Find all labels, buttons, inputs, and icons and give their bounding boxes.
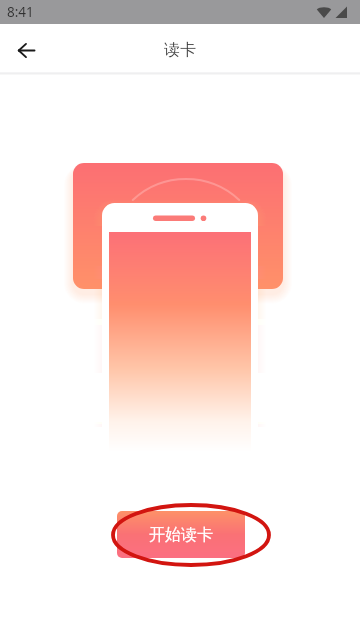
button[interactable]: Back — [2, 26, 50, 74]
staticText: 开始读卡 — [149, 525, 213, 545]
staticText: 8:41 — [7, 3, 34, 21]
staticText: 读卡 — [164, 40, 196, 60]
button[interactable]: 开始读卡 — [117, 511, 245, 558]
